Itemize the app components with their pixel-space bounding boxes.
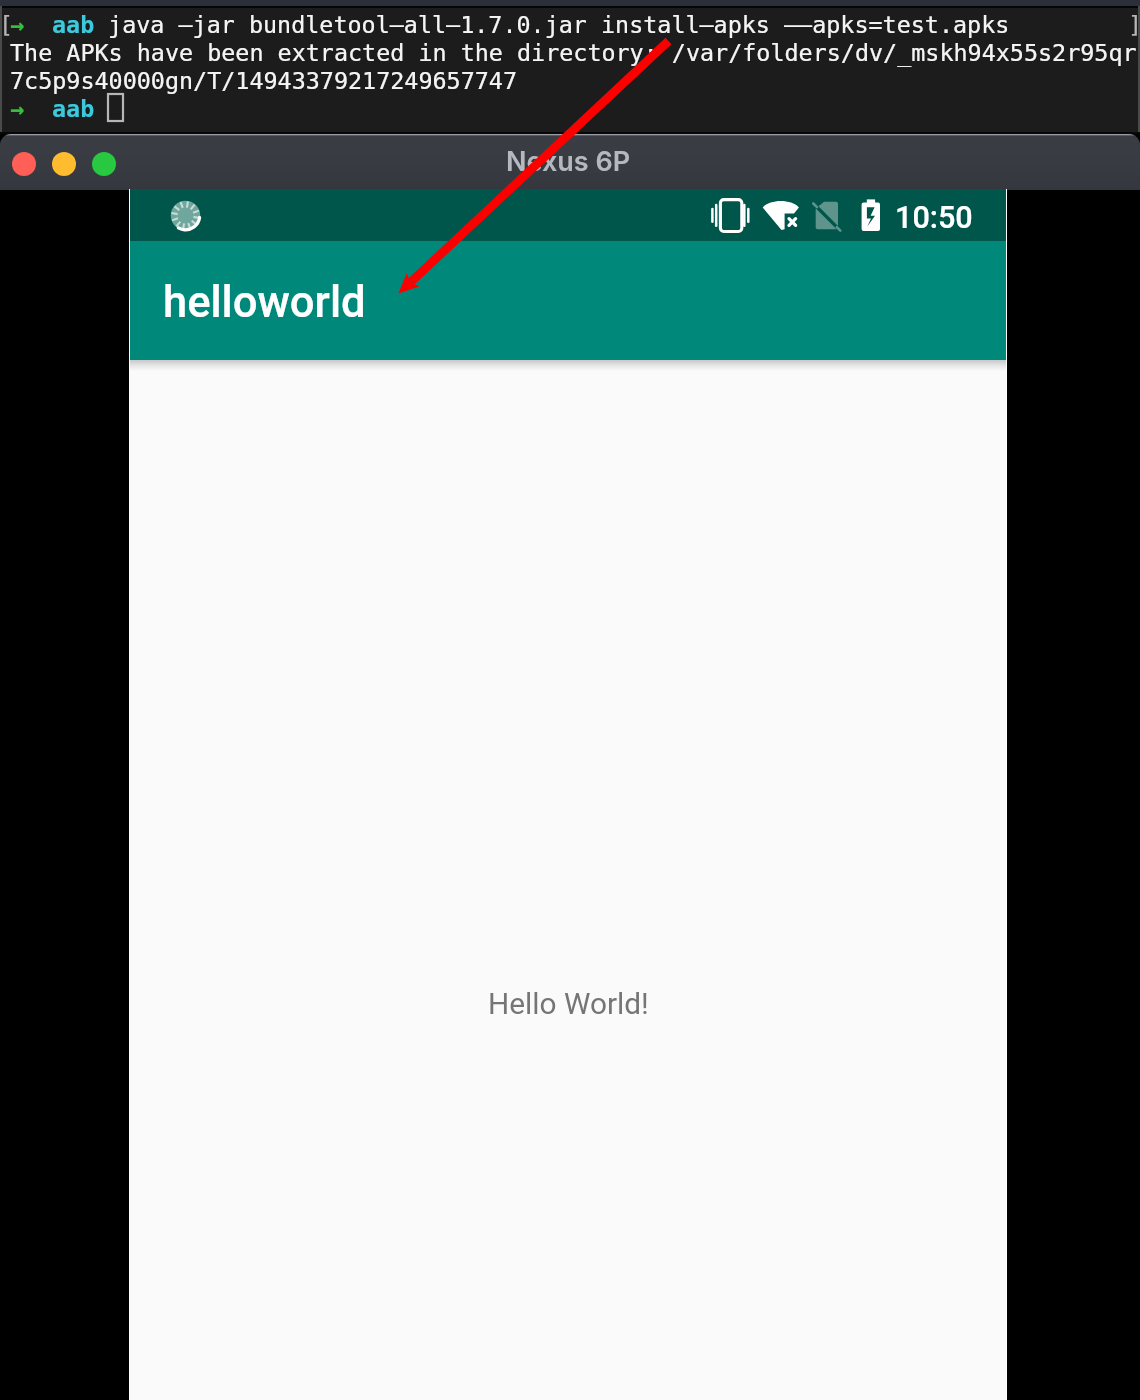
staticText: aab [52, 11, 95, 38]
staticText: 10:50 [895, 200, 973, 236]
staticText: → [10, 11, 25, 38]
staticText: Hello World! [488, 986, 649, 1021]
button[interactable]: Minimise [52, 152, 76, 176]
staticText: java –jar bundletool–all–1.7.0.jar insta… [94, 11, 1010, 38]
button[interactable]: Zoom [92, 152, 116, 176]
staticText: The APKs have been extracted in the dire… [10, 39, 1137, 66]
staticText: → [10, 95, 25, 122]
button[interactable]: Wi-Fi disconnected [760, 197, 802, 234]
staticText: helloworld [163, 277, 366, 328]
button[interactable]: Syncing [170, 200, 201, 231]
staticText: Nexus 6P [506, 145, 631, 178]
button[interactable]: No SIM card [811, 199, 843, 233]
button[interactable]: Ringer set to vibrate [710, 197, 753, 234]
button[interactable]: Close [12, 152, 36, 176]
staticText: [ [0, 11, 14, 38]
staticText: ] [1128, 11, 1140, 38]
button[interactable]: helloworld [130, 241, 1006, 360]
staticText: aab [52, 95, 95, 122]
button[interactable]: Close [0, 134, 1140, 190]
staticText: 7c5p9s40000gn/T/14943379217249657747 [10, 67, 517, 94]
button[interactable]: Battery charging [860, 198, 883, 233]
